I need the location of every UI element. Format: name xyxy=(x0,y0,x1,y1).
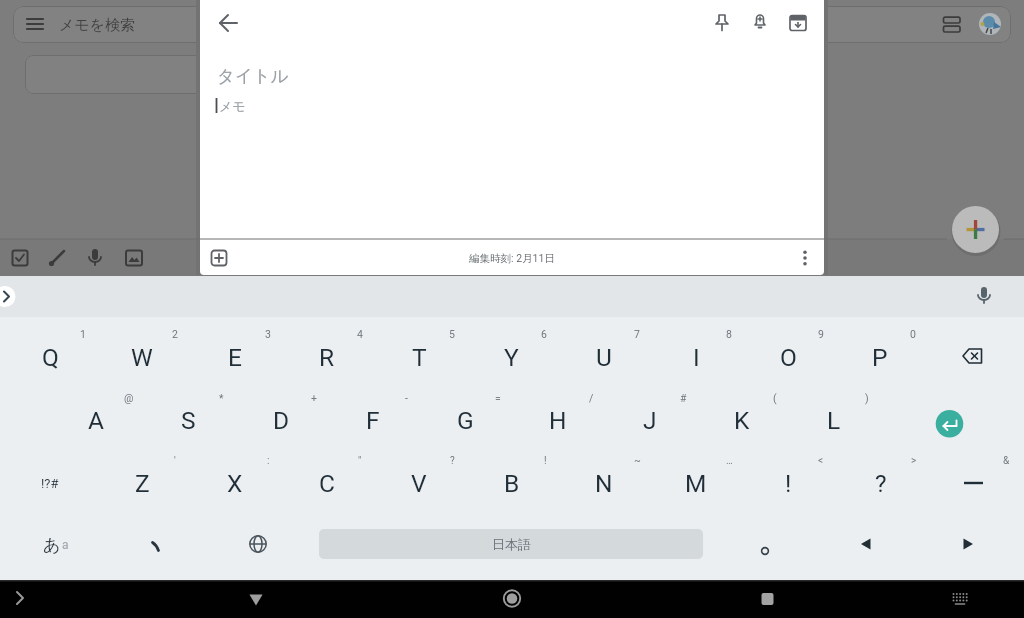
staticText: N xyxy=(595,469,613,498)
staticText: L xyxy=(827,406,841,435)
staticText: Z xyxy=(135,469,150,498)
staticText: O xyxy=(780,343,797,372)
button[interactable]: Z xyxy=(102,455,182,511)
staticText: 7 xyxy=(634,328,640,340)
staticText: 6 xyxy=(541,328,547,340)
button[interactable]: U xyxy=(564,329,644,385)
staticText: + xyxy=(311,392,317,404)
button[interactable] xyxy=(232,580,280,618)
button[interactable] xyxy=(319,529,703,559)
staticText: Y xyxy=(504,343,519,372)
button[interactable] xyxy=(706,7,738,39)
button[interactable]: L xyxy=(794,392,874,448)
staticText: R xyxy=(319,343,335,372)
staticText: X xyxy=(227,469,243,498)
staticText: ) xyxy=(865,392,869,404)
button[interactable]: O xyxy=(748,329,828,385)
staticText: 9 xyxy=(818,328,824,340)
staticText: 1 xyxy=(80,328,86,340)
button[interactable]: V xyxy=(379,455,459,511)
button[interactable] xyxy=(723,516,807,572)
staticText: 8 xyxy=(726,328,732,340)
staticText: S xyxy=(181,406,196,435)
staticText: ' xyxy=(174,455,176,467)
button[interactable] xyxy=(488,580,536,618)
staticText: " xyxy=(358,455,362,467)
staticText: # xyxy=(680,392,687,404)
button[interactable] xyxy=(824,516,908,572)
button[interactable] xyxy=(930,328,1014,384)
button[interactable]: A xyxy=(56,392,136,448)
staticText: : xyxy=(267,455,270,467)
staticText: 0 xyxy=(910,328,916,340)
staticText: = xyxy=(495,392,501,404)
button[interactable]: I xyxy=(656,329,736,385)
button[interactable]: E xyxy=(195,329,275,385)
staticText: 5 xyxy=(449,328,455,340)
staticText: 3 xyxy=(265,328,271,340)
staticText: メモを検索 xyxy=(59,16,136,35)
button[interactable]: X xyxy=(195,455,275,511)
staticText: 編集時刻: 2月11日 xyxy=(469,252,555,265)
button[interactable]: Q xyxy=(10,329,90,385)
staticText: J xyxy=(643,406,657,435)
button[interactable]: J xyxy=(610,392,690,448)
button[interactable]: C xyxy=(287,455,367,511)
staticText: … xyxy=(726,455,733,467)
button[interactable] xyxy=(120,522,190,566)
staticText: T xyxy=(412,343,427,372)
button[interactable]: あ xyxy=(22,523,82,567)
button[interactable] xyxy=(931,455,1015,511)
button[interactable] xyxy=(926,516,1010,572)
button[interactable] xyxy=(782,7,814,39)
staticText: 日本語 xyxy=(492,536,531,552)
button[interactable]: M xyxy=(656,455,736,511)
staticText: G xyxy=(457,406,474,435)
staticText: V xyxy=(411,469,427,498)
button[interactable]: N xyxy=(564,455,644,511)
staticText: @ xyxy=(124,392,134,404)
staticText: I xyxy=(693,343,700,372)
button[interactable]: ? xyxy=(841,455,921,511)
staticText: E xyxy=(228,343,242,372)
staticText: < xyxy=(818,455,824,467)
button[interactable] xyxy=(789,242,821,274)
button[interactable] xyxy=(212,7,244,39)
button[interactable]: W xyxy=(102,329,182,385)
staticText: ? xyxy=(450,455,455,467)
staticText: Q xyxy=(42,343,59,372)
button[interactable] xyxy=(216,516,300,572)
button[interactable] xyxy=(952,206,999,253)
button[interactable]: D xyxy=(241,392,321,448)
button[interactable]: Y xyxy=(471,329,551,385)
staticText: ? xyxy=(875,469,887,498)
button[interactable]: R xyxy=(287,329,367,385)
button[interactable]: P xyxy=(840,329,920,385)
staticText: タイトル xyxy=(217,65,289,87)
staticText: & xyxy=(1003,455,1010,467)
button[interactable]: B xyxy=(472,455,552,511)
staticText: 4 xyxy=(357,328,363,340)
staticText: メモ xyxy=(219,98,246,114)
button[interactable]: T xyxy=(379,329,459,385)
staticText: * xyxy=(219,392,224,404)
button[interactable] xyxy=(743,580,791,618)
button[interactable]: G xyxy=(425,392,505,448)
button[interactable]: H xyxy=(518,392,598,448)
button[interactable]: K xyxy=(702,392,782,448)
button[interactable]: S xyxy=(148,392,228,448)
staticText: M xyxy=(685,469,707,498)
button[interactable] xyxy=(922,396,978,452)
staticText: 2 xyxy=(172,328,178,340)
button[interactable]: F xyxy=(333,392,413,448)
button[interactable] xyxy=(13,6,1011,43)
button[interactable] xyxy=(744,7,776,39)
button[interactable] xyxy=(25,55,645,94)
button[interactable]: !?# xyxy=(10,455,90,511)
staticText: C xyxy=(319,469,335,498)
staticText: B xyxy=(504,469,520,498)
staticText: ! xyxy=(544,455,547,467)
button[interactable]: ! xyxy=(748,455,828,511)
button[interactable] xyxy=(203,242,235,274)
staticText: > xyxy=(911,455,917,467)
